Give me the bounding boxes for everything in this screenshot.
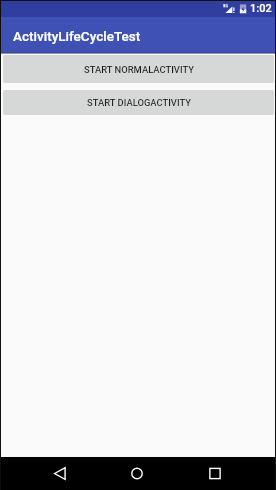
button[interactable]: Recent apps [192,457,238,490]
staticText: START DIALOGACTIVITY [87,97,191,108]
staticText: ActivityLifeCycleTest [13,28,141,44]
button[interactable]: Home [114,457,160,490]
button[interactable]: START NORMALACTIVITY [3,55,274,83]
button[interactable]: START DIALOGACTIVITY [3,90,274,115]
staticText: 1:02 [250,2,272,15]
button[interactable]: Back [37,457,83,490]
staticText: START NORMALACTIVITY [84,64,194,75]
